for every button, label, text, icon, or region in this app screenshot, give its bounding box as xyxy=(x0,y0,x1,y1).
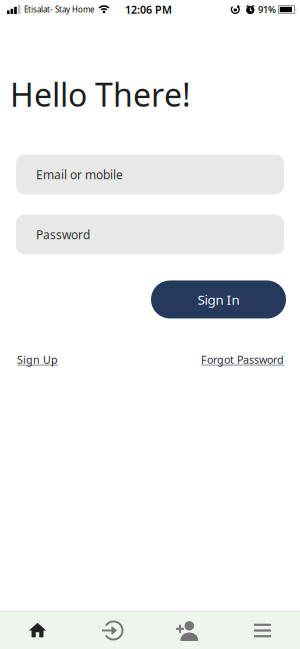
staticText: 12:06 PM xyxy=(125,2,172,17)
button[interactable]: Home xyxy=(0,612,75,649)
button[interactable]: Forgot Password xyxy=(201,352,284,367)
staticText: Sign Up xyxy=(17,352,58,367)
button[interactable]: Sign In xyxy=(151,280,286,318)
button[interactable]: Sign Up xyxy=(17,352,58,367)
button[interactable]: Sign In xyxy=(75,612,150,649)
textField[interactable]: Email or mobile xyxy=(36,166,150,182)
staticText: 91% xyxy=(258,3,276,16)
staticText: Forgot Password xyxy=(201,352,284,367)
button[interactable]: Menu xyxy=(225,612,300,649)
staticText: Password xyxy=(36,226,90,242)
staticText: Email or mobile xyxy=(36,166,123,182)
textField[interactable]: Password xyxy=(36,226,150,242)
staticText: Sign In xyxy=(197,291,239,308)
staticText: Hello There! xyxy=(10,73,191,115)
staticText: Etisalat- Stay Home xyxy=(24,4,95,15)
button[interactable]: Sign Up xyxy=(150,612,225,649)
